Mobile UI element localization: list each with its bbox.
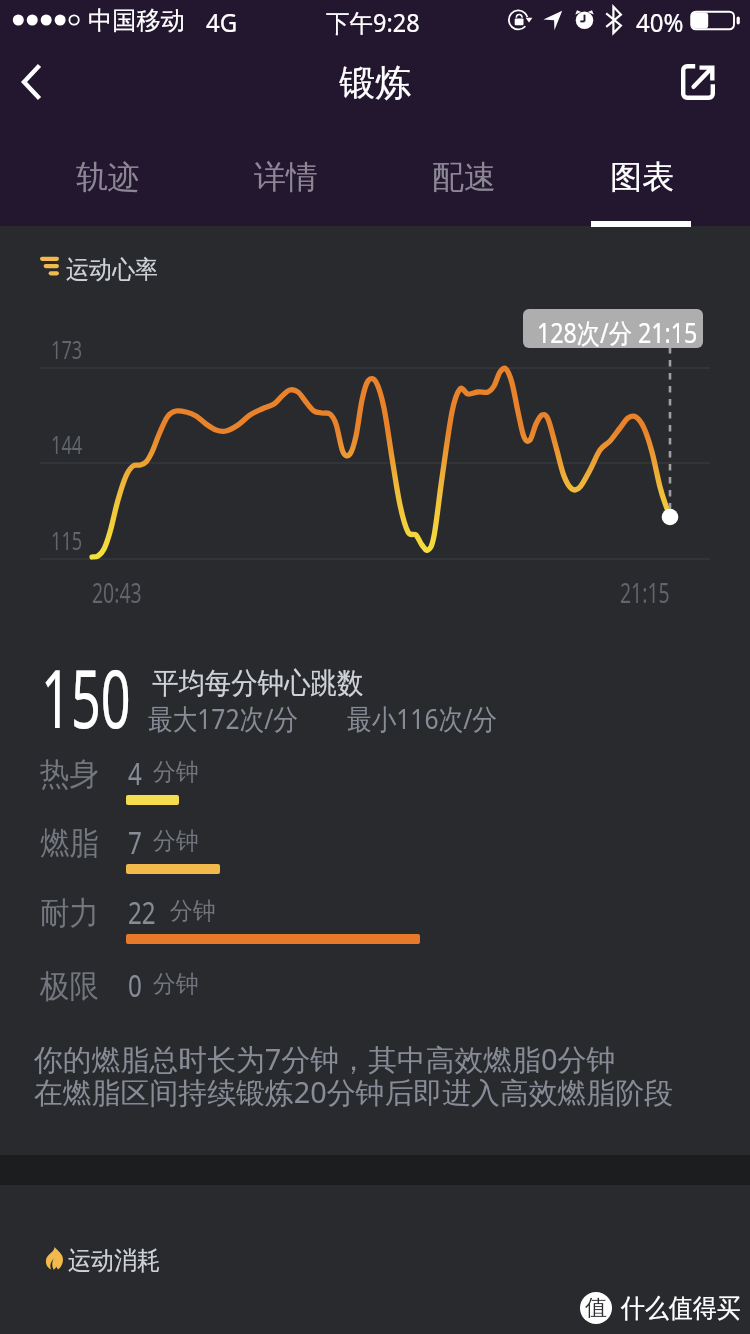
- staticText: 平均每分钟心跳数: [152, 665, 363, 702]
- staticText: 值: [585, 1294, 607, 1322]
- staticText: 下午9:28: [326, 5, 420, 39]
- staticText: 中国移动: [88, 5, 185, 36]
- staticText: 20:43: [92, 574, 142, 611]
- staticText: 耐力: [40, 893, 99, 933]
- staticText: 运动消耗: [68, 1245, 160, 1276]
- staticText: 配速: [432, 157, 496, 197]
- staticText: 分钟: [170, 896, 216, 926]
- staticText: 115: [51, 522, 82, 557]
- staticText: 173: [51, 331, 82, 366]
- staticText: 22: [128, 891, 156, 933]
- staticText: 分钟: [153, 826, 199, 856]
- staticText: 最小116次/分: [347, 699, 497, 737]
- button[interactable]: Back: [0, 42, 64, 106]
- button[interactable]: 详情: [197, 130, 375, 226]
- staticText: 图表: [610, 157, 674, 197]
- staticText: 21:15: [620, 574, 670, 611]
- staticText: 144: [51, 426, 82, 461]
- staticText: 分钟: [153, 969, 199, 999]
- staticText: 4G: [206, 5, 238, 39]
- button[interactable]: 轨迹: [19, 130, 197, 226]
- staticText: 0: [128, 964, 142, 1006]
- staticText: 在燃脂区间持续锻炼20分钟后即进入高效燃脂阶段: [34, 1072, 674, 1112]
- staticText: 运动心率: [66, 254, 158, 285]
- staticText: 什么值得买: [621, 1292, 741, 1325]
- staticText: 锻炼: [339, 60, 411, 105]
- staticText: 7: [128, 821, 142, 863]
- staticText: 40%: [636, 5, 684, 39]
- staticText: 极限: [40, 966, 99, 1006]
- staticText: 轨迹: [76, 157, 140, 197]
- button[interactable]: 配速: [375, 130, 553, 226]
- staticText: 你的燃脂总时长为7分钟，其中高效燃脂0分钟: [34, 1039, 616, 1079]
- staticText: 150: [41, 641, 131, 751]
- staticText: 最大172次/分: [148, 699, 298, 737]
- staticText: 128次/分 21:15: [537, 314, 698, 351]
- button[interactable]: 图表: [553, 130, 731, 226]
- button[interactable]: Share: [679, 42, 743, 106]
- staticText: 燃脂: [40, 823, 99, 863]
- staticText: 热身: [40, 754, 99, 794]
- staticText: 分钟: [153, 757, 199, 787]
- staticText: 4: [128, 752, 142, 794]
- staticText: 详情: [254, 157, 318, 197]
